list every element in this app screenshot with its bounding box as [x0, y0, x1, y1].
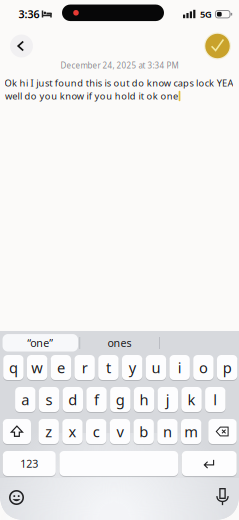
staticText: g [116, 390, 125, 409]
button[interactable]: i [169, 354, 190, 381]
staticText: k [187, 390, 195, 409]
staticText: 5G [200, 8, 212, 20]
button[interactable]: x [62, 418, 83, 445]
button[interactable]: r [74, 354, 95, 381]
staticText: z [45, 422, 52, 441]
button[interactable]: w [27, 354, 47, 381]
staticText: i [178, 358, 182, 377]
staticText: u [151, 358, 160, 377]
staticText: n [163, 422, 172, 441]
staticText: p [223, 358, 232, 377]
button[interactable]: v [110, 418, 130, 445]
button[interactable] [208, 418, 237, 445]
button[interactable]: a [15, 386, 35, 413]
button[interactable]: m [181, 418, 201, 445]
staticText: d [68, 390, 77, 409]
button[interactable]: ones [82, 334, 157, 352]
button[interactable]: “one” [2, 334, 78, 352]
button[interactable] [5, 486, 27, 508]
button[interactable]: j [158, 386, 178, 413]
staticText: Ok hi I just found this is out do know c… [5, 77, 233, 89]
button[interactable]: u [146, 354, 166, 381]
staticText: f [94, 390, 99, 409]
button[interactable]: t [98, 354, 119, 381]
button[interactable]: q [3, 354, 24, 381]
staticText: c [93, 422, 100, 441]
button[interactable]: d [63, 386, 83, 413]
staticText: ones [108, 336, 132, 350]
button[interactable]: p [217, 354, 237, 381]
button[interactable] [204, 32, 231, 59]
staticText: 3:36 [18, 7, 39, 21]
staticText: j [166, 390, 170, 409]
staticText: x [68, 422, 76, 441]
button[interactable]: y [122, 354, 142, 381]
staticText: well do you know if you hold it ok one [5, 90, 178, 102]
staticText: h [139, 390, 148, 409]
button[interactable]: b [133, 418, 154, 445]
button[interactable] [211, 486, 233, 508]
button[interactable]: 123 [3, 450, 56, 477]
staticText: r [82, 358, 88, 377]
staticText: s [45, 390, 52, 409]
staticText: 123 [20, 456, 38, 471]
button[interactable] [10, 34, 33, 57]
button[interactable]: g [110, 386, 130, 413]
button[interactable] [59, 450, 178, 477]
button[interactable]: h [134, 386, 154, 413]
staticText: v [116, 422, 123, 441]
button[interactable]: f [86, 386, 107, 413]
staticText: “one” [27, 336, 53, 350]
button[interactable] [3, 418, 31, 445]
staticText: l [213, 390, 217, 409]
staticText: t [106, 358, 111, 377]
button[interactable]: l [205, 386, 225, 413]
button[interactable]: c [86, 418, 106, 445]
staticText: b [139, 422, 148, 441]
button[interactable]: s [39, 386, 59, 413]
button[interactable]: n [157, 418, 178, 445]
button[interactable]: z [38, 418, 59, 445]
button[interactable] [182, 450, 237, 477]
staticText: e [57, 358, 65, 377]
staticText: December 24, 2025 at 3:34 PM [60, 60, 178, 71]
button[interactable]: k [181, 386, 202, 413]
staticText: a [21, 390, 29, 409]
staticText: o [199, 358, 208, 377]
button[interactable]: e [51, 354, 71, 381]
button[interactable]: o [193, 354, 214, 381]
staticText: y [129, 358, 136, 377]
staticText: q [9, 358, 18, 377]
staticText: w [31, 358, 43, 377]
staticText: m [184, 422, 198, 441]
